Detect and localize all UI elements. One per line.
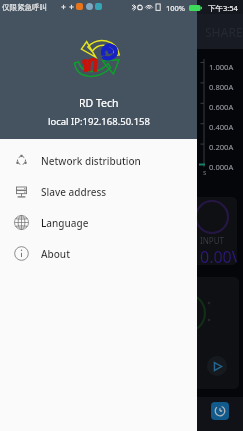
button[interactable]: History xyxy=(211,402,229,420)
staticText: 0.000A xyxy=(209,162,234,172)
staticText: Language xyxy=(41,216,89,230)
button[interactable]: About xyxy=(0,238,197,269)
staticText: 1.000A xyxy=(209,62,234,72)
staticText: About xyxy=(41,247,70,261)
staticText: INPUT xyxy=(200,235,224,246)
staticText: 仅限紧急呼叫 xyxy=(2,3,47,12)
staticText: Slave address xyxy=(41,185,107,199)
button[interactable]: Slave address xyxy=(0,176,197,207)
staticText: 0.200A xyxy=(209,142,234,152)
staticText: s xyxy=(203,168,207,178)
staticText: 0.00V xyxy=(200,246,237,265)
staticText: 0.600A xyxy=(209,102,234,112)
staticText: 下午3:54 xyxy=(208,3,238,13)
button[interactable]: Language xyxy=(0,207,197,238)
staticText: local IP:192.168.50.158 xyxy=(48,115,150,128)
staticText: 0.800A xyxy=(209,82,234,92)
staticText: Network distribution xyxy=(41,154,141,168)
staticText: 100% xyxy=(166,3,186,13)
button[interactable]: Network distribution xyxy=(0,145,197,176)
staticText: RD Tech xyxy=(79,96,119,110)
button[interactable]: Play xyxy=(120,277,239,389)
button[interactable]: INPUT xyxy=(120,197,237,265)
staticText: SHARE xyxy=(205,24,243,40)
staticText: 0.400A xyxy=(209,122,234,132)
button[interactable]: Play xyxy=(207,356,227,376)
